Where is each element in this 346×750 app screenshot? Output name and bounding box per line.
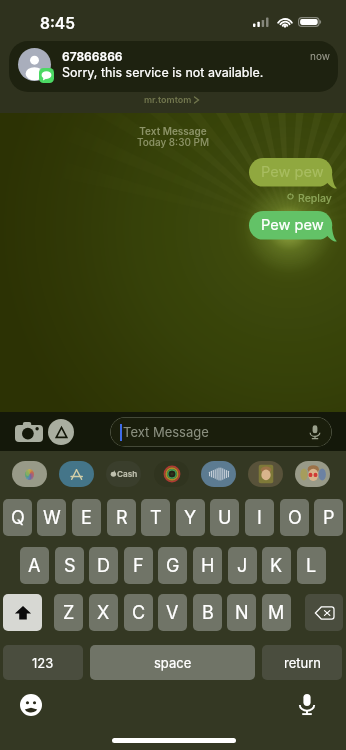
staticText: I <box>257 507 262 529</box>
button[interactable]: music <box>154 461 189 487</box>
button[interactable]: Camera <box>14 417 44 447</box>
staticText: L <box>306 555 317 577</box>
staticText: O <box>288 507 302 529</box>
button[interactable]: space <box>90 645 255 680</box>
staticText: A <box>28 555 41 577</box>
staticText: K <box>270 555 283 577</box>
staticText: S <box>64 555 76 577</box>
button[interactable]: 67866866 <box>9 41 338 92</box>
button[interactable]: C <box>124 594 153 631</box>
button[interactable]: U <box>210 499 239 536</box>
staticText: Sorry, this service is not available. <box>62 65 264 80</box>
staticText: H <box>201 555 215 577</box>
button[interactable]: return <box>262 645 342 680</box>
staticText: Text Message <box>123 424 209 440</box>
staticText: Pew pew <box>261 163 324 181</box>
button[interactable]: Emoji <box>20 694 42 716</box>
staticText: J <box>237 555 248 577</box>
staticText: B <box>202 602 214 624</box>
staticText: Cash <box>117 469 138 479</box>
button[interactable]: V <box>158 594 187 631</box>
button[interactable]: B <box>193 594 222 631</box>
button[interactable]: I <box>245 499 274 536</box>
button[interactable]: K <box>262 547 291 584</box>
staticText: Text Message <box>0 125 346 137</box>
button[interactable]: W <box>37 499 66 536</box>
button[interactable]: M <box>262 594 291 631</box>
staticText: 67866866 <box>62 49 123 64</box>
staticText: mr.tomtom <box>144 94 192 105</box>
staticText: F <box>133 555 144 577</box>
button[interactable]: memoji2 <box>295 461 330 487</box>
staticText: 8:45 <box>40 14 75 33</box>
staticText: G <box>166 555 180 577</box>
button[interactable]: S <box>55 547 84 584</box>
button[interactable]: F <box>124 547 153 584</box>
button[interactable]: cash <box>106 461 141 487</box>
button[interactable]: A <box>20 547 49 584</box>
staticText: M <box>268 602 285 624</box>
staticText: Z <box>63 602 75 624</box>
button[interactable]: Replay <box>284 190 334 204</box>
button[interactable]: 123 <box>3 645 83 680</box>
button[interactable]: X <box>89 594 118 631</box>
staticText: W <box>43 507 61 529</box>
staticText: return <box>284 655 321 671</box>
staticText: Pew pew <box>261 216 324 234</box>
button[interactable]: Y <box>176 499 205 536</box>
button[interactable]: L <box>297 547 326 584</box>
button[interactable]: Dictate <box>307 424 323 440</box>
staticText: V <box>166 602 179 624</box>
button[interactable]: Pew pew <box>249 211 337 243</box>
staticText: T <box>150 507 162 529</box>
button[interactable]: Pew pew <box>249 158 337 190</box>
staticText: D <box>97 555 110 577</box>
staticText: space <box>154 655 192 671</box>
staticText: N <box>235 602 249 624</box>
button[interactable]: T <box>141 499 170 536</box>
button[interactable]: Dictation <box>295 692 319 716</box>
button[interactable]: R <box>107 499 136 536</box>
button[interactable]: E <box>72 499 101 536</box>
button[interactable]: appstore <box>59 461 94 487</box>
staticText: U <box>218 507 232 529</box>
staticText: C <box>132 602 146 624</box>
staticText: Q <box>11 507 25 529</box>
staticText: R <box>116 507 128 529</box>
button[interactable]: G <box>158 547 187 584</box>
button[interactable]: H <box>193 547 222 584</box>
button[interactable]: Text Message <box>110 417 332 447</box>
button[interactable]: Apps <box>48 419 74 445</box>
button[interactable]: Z <box>54 594 83 631</box>
button[interactable]: Q <box>3 499 32 536</box>
button[interactable]: N <box>227 594 256 631</box>
button[interactable]: Backspace <box>305 594 343 631</box>
button[interactable]: Shift <box>3 594 42 631</box>
button[interactable]: memoji1 <box>248 461 283 487</box>
button[interactable]: O <box>280 499 309 536</box>
button[interactable]: D <box>89 547 118 584</box>
staticText: X <box>97 602 110 624</box>
staticText: Y <box>184 507 197 529</box>
staticText: 123 <box>32 655 54 671</box>
staticText: Replay <box>298 192 332 205</box>
button[interactable]: audio <box>201 461 236 487</box>
staticText: P <box>323 507 335 529</box>
staticText: now <box>310 50 330 62</box>
staticText: Today 8:30 PM <box>0 136 346 148</box>
button[interactable]: photos <box>12 461 47 487</box>
button[interactable]: J <box>228 547 257 584</box>
staticText: E <box>81 507 92 529</box>
button[interactable]: P <box>314 499 343 536</box>
